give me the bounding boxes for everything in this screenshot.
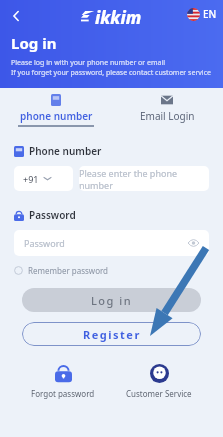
button[interactable]: Forgot password: [31, 364, 95, 399]
staticText: Forgot password: [31, 388, 95, 399]
button[interactable]: Register: [22, 322, 201, 346]
button[interactable]: EN: [187, 7, 217, 21]
staticText: Password: [24, 237, 188, 249]
staticText: +91: [23, 173, 39, 185]
staticText: Please enter the phone number: [79, 167, 209, 191]
button[interactable]: Email Login: [111, 88, 223, 130]
button[interactable]: Remember password: [14, 265, 109, 276]
staticText: Customer Service: [126, 388, 192, 399]
staticText: Email Login: [140, 109, 195, 123]
staticText: Register: [83, 327, 141, 342]
button[interactable]: Please enter the phone number: [79, 166, 209, 191]
staticText: Log in: [11, 33, 57, 53]
button[interactable]: Customer Service: [126, 364, 192, 399]
staticText: Please log in with your phone number or …: [11, 58, 166, 68]
staticText: phone number: [20, 109, 93, 123]
button[interactable]: Log in: [22, 288, 201, 312]
button[interactable]: Back: [4, 4, 28, 28]
staticText: ikkim: [95, 6, 142, 29]
staticText: Log in: [91, 293, 133, 308]
button[interactable]: phone number: [0, 88, 111, 130]
button[interactable]: Password: [14, 230, 209, 256]
staticText: Password: [29, 208, 76, 222]
staticText: EN: [203, 7, 217, 21]
staticText: Remember password: [28, 265, 109, 276]
button[interactable]: +91: [14, 166, 73, 191]
staticText: Phone number: [29, 144, 102, 158]
staticText: If you forget your password, please cont…: [11, 68, 211, 78]
